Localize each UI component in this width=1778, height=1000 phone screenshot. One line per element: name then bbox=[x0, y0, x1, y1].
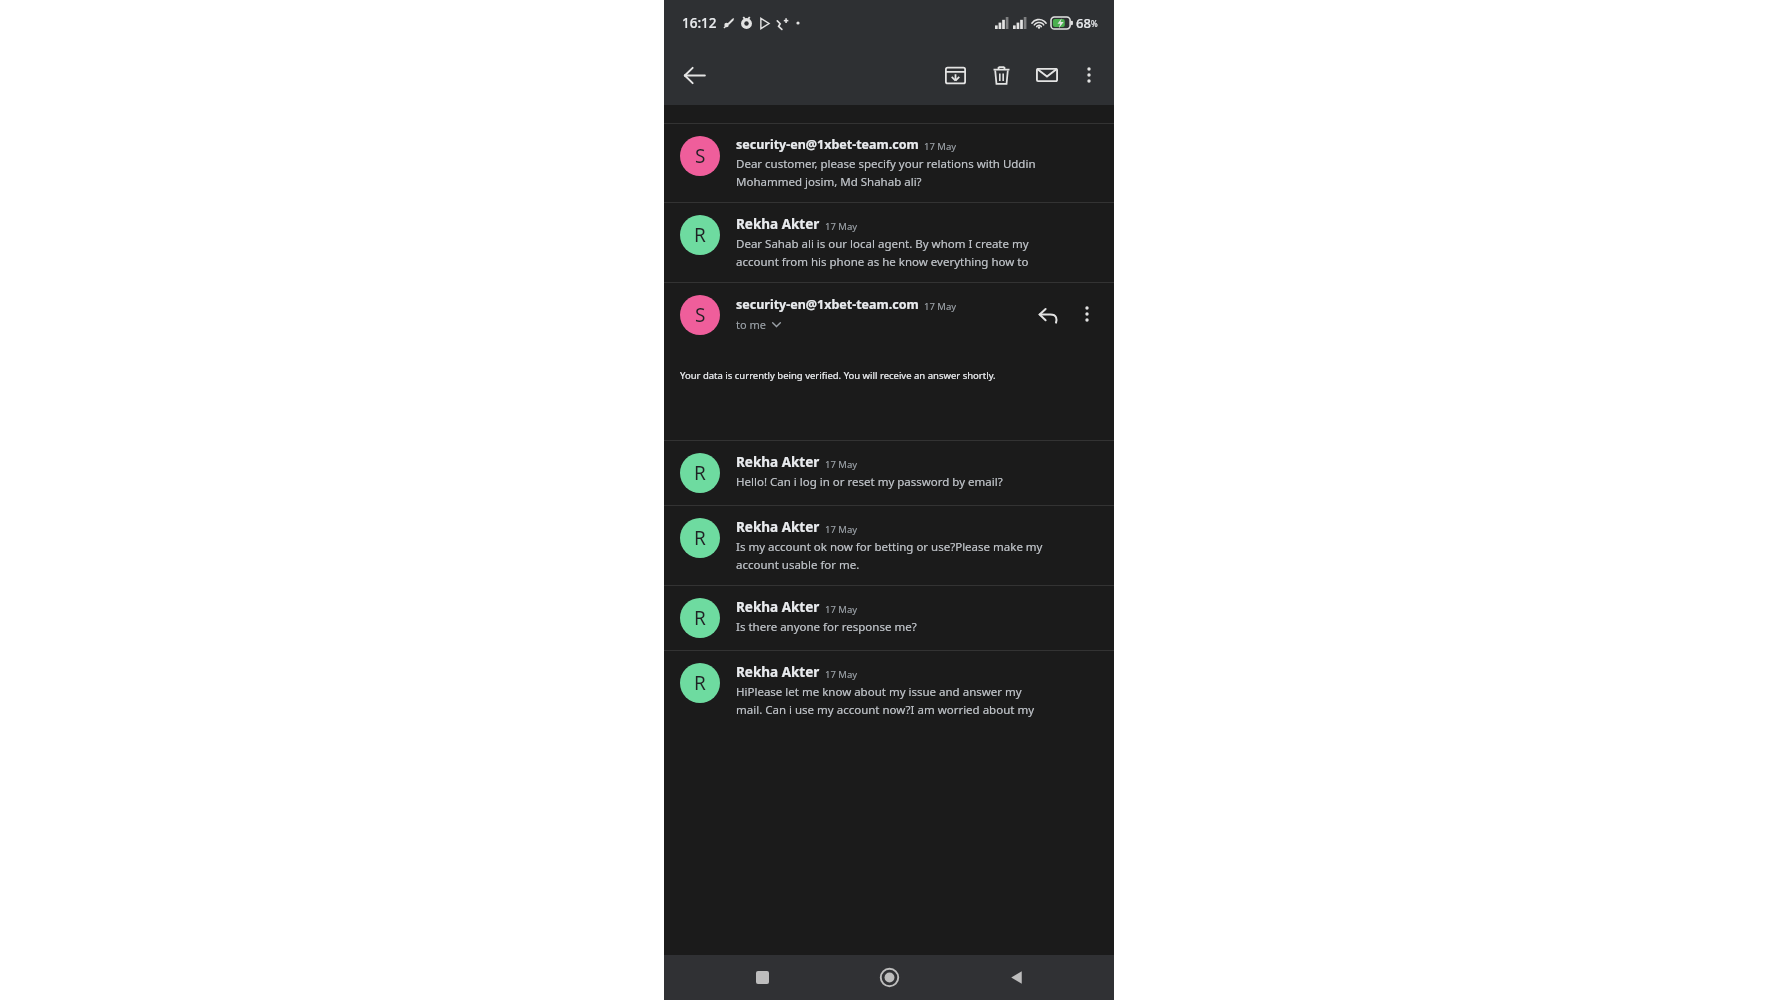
button[interactable]: Archive bbox=[934, 54, 976, 96]
staticText: R bbox=[694, 222, 706, 248]
button[interactable]: Recent apps bbox=[698, 955, 826, 1000]
button[interactable]: R bbox=[664, 441, 1114, 505]
button[interactable]: More options bbox=[1068, 295, 1106, 333]
staticText: R bbox=[694, 525, 706, 551]
staticText: Hello! Can i log in or reset my password… bbox=[736, 474, 1003, 490]
staticText: Rekha Akter bbox=[736, 518, 820, 536]
staticText: 68 bbox=[1076, 14, 1091, 32]
staticText: 17 May bbox=[825, 603, 858, 616]
button[interactable]: Home bbox=[826, 955, 953, 1000]
staticText: Rekha Akter bbox=[736, 453, 820, 471]
button[interactable]: More options bbox=[1068, 54, 1110, 96]
button[interactable]: to me bbox=[736, 317, 782, 332]
staticText: 17 May bbox=[825, 668, 858, 681]
staticText: S bbox=[695, 302, 706, 328]
staticText: 17 May bbox=[825, 220, 858, 233]
staticText: 16:12 bbox=[682, 14, 717, 32]
button[interactable]: R bbox=[664, 506, 1114, 585]
staticText: to me bbox=[736, 317, 766, 332]
staticText: 17 May bbox=[825, 458, 858, 471]
staticText: 17 May bbox=[924, 140, 957, 153]
button[interactable]: R bbox=[664, 651, 1114, 730]
staticText: account from his phone as he know everyt… bbox=[736, 254, 1029, 270]
staticText: Dear customer, please specify your relat… bbox=[736, 156, 1036, 172]
button[interactable]: R bbox=[664, 203, 1114, 282]
staticText: security-en@1xbet-team.com bbox=[736, 296, 919, 313]
button[interactable]: Mark unread bbox=[1026, 54, 1068, 96]
staticText: mail. Can i use my account now?I am worr… bbox=[736, 702, 1035, 718]
button[interactable]: R bbox=[664, 586, 1114, 650]
staticText: Rekha Akter bbox=[736, 663, 820, 681]
staticText: Is my account ok now for betting or use?… bbox=[736, 539, 1043, 555]
button[interactable]: Back bbox=[953, 955, 1080, 1000]
staticText: R bbox=[694, 460, 706, 486]
staticText: 17 May bbox=[825, 523, 858, 536]
staticText: R bbox=[694, 670, 706, 696]
staticText: % bbox=[1091, 18, 1098, 29]
staticText: account usable for me. bbox=[736, 557, 860, 573]
staticText: Rekha Akter bbox=[736, 598, 820, 616]
button[interactable]: Reply bbox=[1028, 295, 1068, 335]
staticText: R bbox=[694, 605, 706, 631]
staticText: 17 May bbox=[924, 300, 957, 313]
staticText: Mohammed josim, Md Shahab ali? bbox=[736, 174, 922, 190]
button[interactable]: Back bbox=[672, 53, 716, 97]
staticText: S bbox=[695, 143, 706, 169]
button[interactable]: S bbox=[664, 124, 1114, 202]
staticText: HiPlease let me know about my issue and … bbox=[736, 684, 1022, 700]
staticText: Rekha Akter bbox=[736, 215, 820, 233]
button[interactable]: Delete bbox=[980, 54, 1022, 96]
staticText: Your data is currently being verified. Y… bbox=[680, 369, 996, 382]
staticText: Dear Sahab ali is our local agent. By wh… bbox=[736, 236, 1029, 252]
staticText: Is there anyone for response me? bbox=[736, 619, 917, 635]
staticText: security-en@1xbet-team.com bbox=[736, 136, 919, 153]
